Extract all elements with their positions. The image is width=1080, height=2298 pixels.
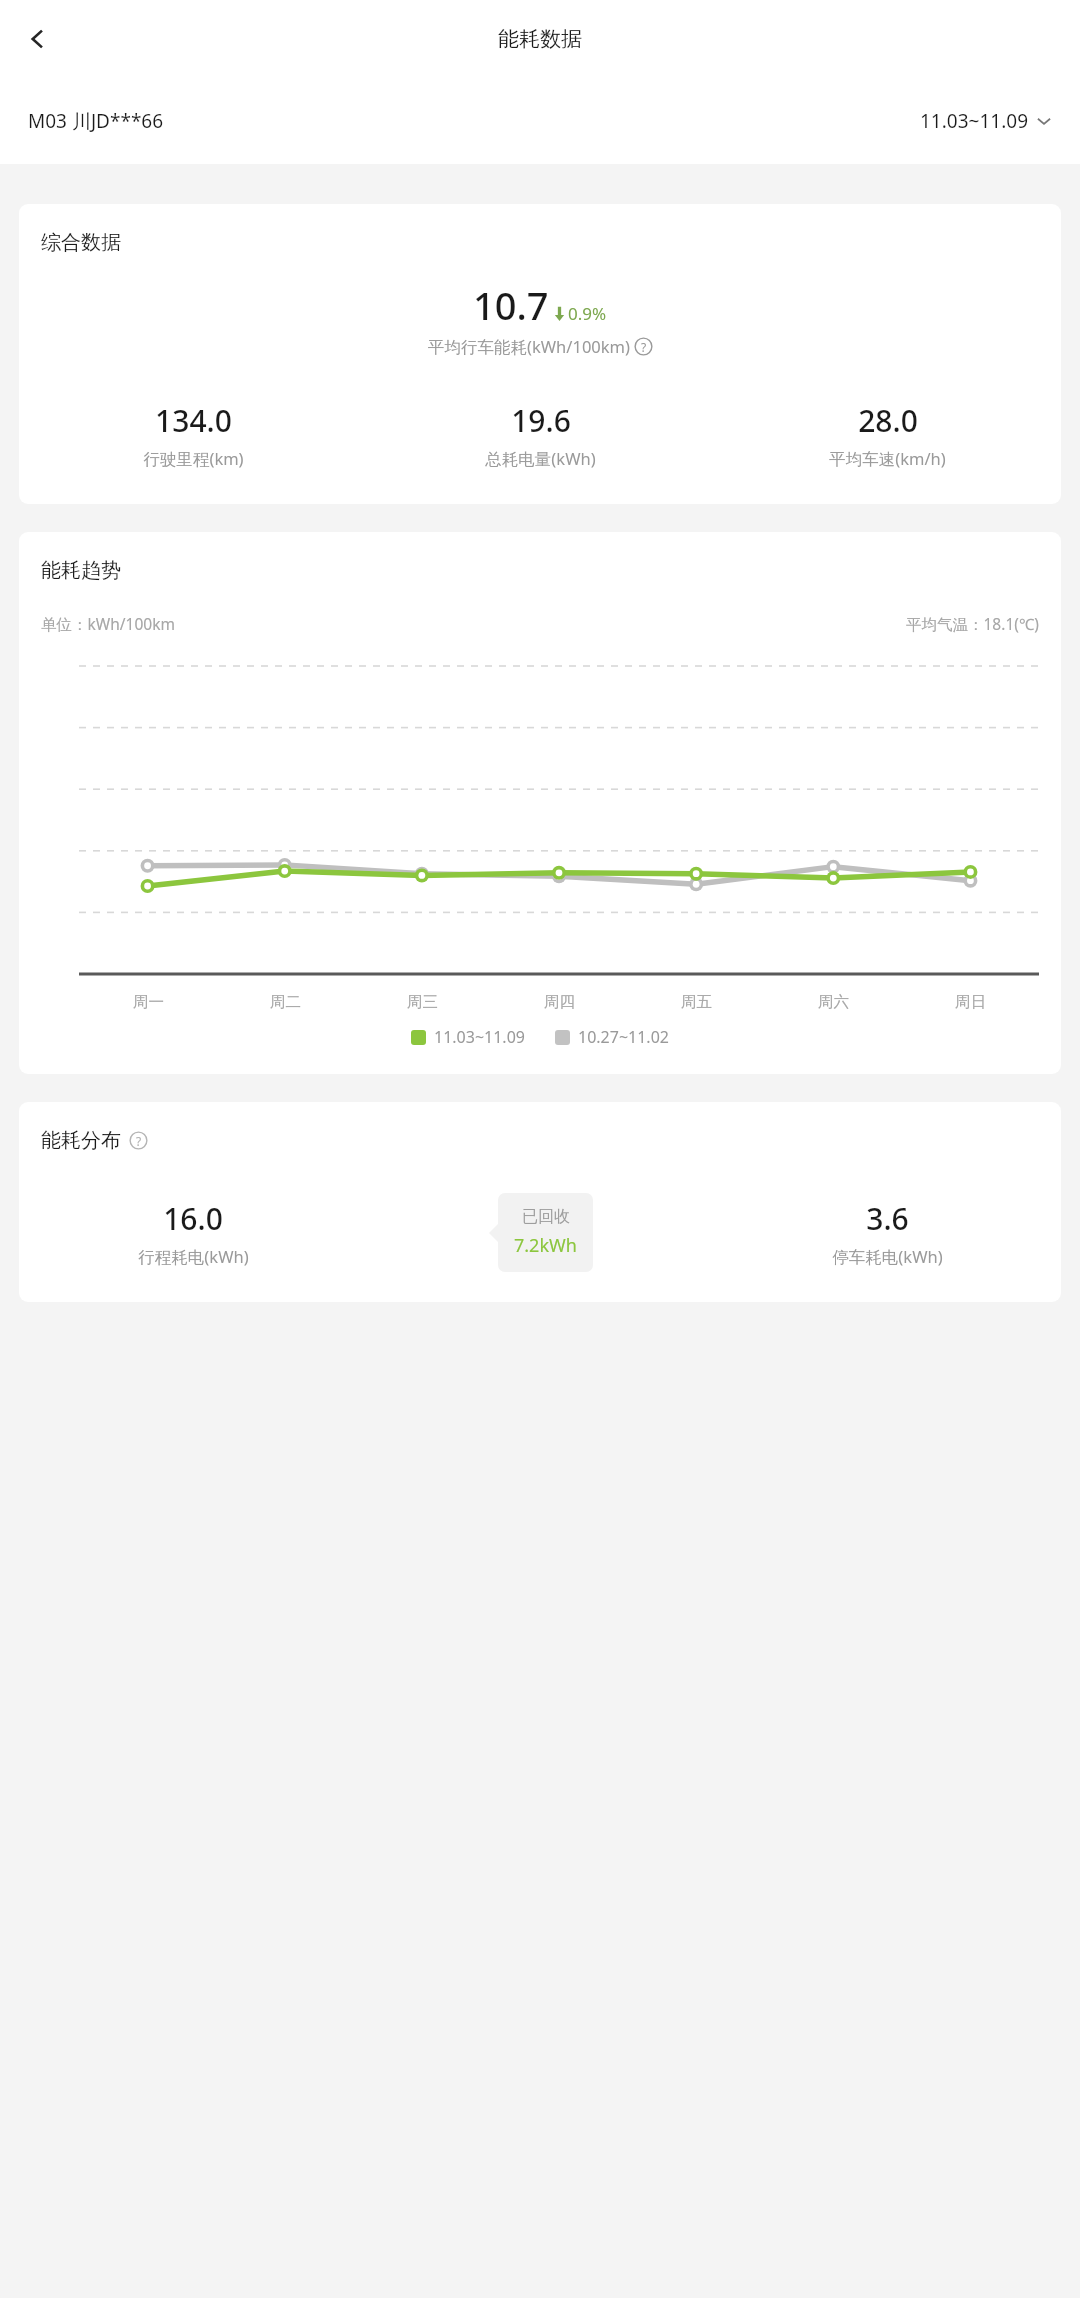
staticText: 10.27~11.02 (578, 1026, 669, 1048)
staticText: 周一 (133, 992, 164, 1012)
button[interactable]: Help (129, 1131, 148, 1150)
staticText: 10.7 (473, 279, 549, 331)
staticText: 停车耗电(kWh) (832, 1245, 943, 1268)
staticText: 28.0 (858, 400, 918, 441)
staticText: 3.6 (866, 1198, 909, 1239)
staticText: 11.03~11.09 (920, 108, 1028, 134)
button[interactable]: 11.03~11.09 (920, 108, 1052, 134)
staticText: 周三 (407, 992, 438, 1012)
staticText: 周六 (818, 992, 849, 1012)
staticText: 周二 (270, 992, 301, 1012)
staticText: 能耗趋势 (41, 558, 121, 583)
button[interactable]: Back (14, 15, 62, 63)
staticText: 19.6 (511, 400, 571, 441)
staticText: ? (136, 1133, 142, 1149)
staticText: 134.0 (155, 400, 232, 441)
staticText: 能耗数据 (498, 26, 582, 52)
button[interactable]: Help (634, 337, 653, 356)
staticText: 11.03~11.09 (434, 1026, 525, 1048)
staticText: 行程耗电(kWh) (138, 1245, 249, 1268)
staticText: 单位：kWh/100km (41, 613, 175, 634)
staticText: 周四 (544, 992, 575, 1012)
staticText: 16.0 (163, 1198, 223, 1239)
staticText: ? (641, 339, 647, 355)
staticText: 综合数据 (41, 230, 121, 255)
staticText: 总耗电量(kWh) (485, 447, 596, 470)
staticText: 7.2kWh (514, 1233, 577, 1258)
staticText: 行驶里程(km) (143, 447, 244, 470)
staticText: 平均气温：18.1(℃) (906, 613, 1039, 634)
staticText: 能耗分布 (41, 1128, 121, 1153)
staticText: M03 川JD***66 (28, 108, 164, 134)
staticText: 0.9% (568, 302, 607, 325)
staticText: 已回收 (522, 1207, 570, 1227)
staticText: 平均行车能耗(kWh/100km) (428, 335, 630, 358)
staticText: 平均车速(km/h) (829, 447, 946, 470)
staticText: 周日 (955, 992, 986, 1012)
staticText: 周五 (681, 992, 712, 1012)
